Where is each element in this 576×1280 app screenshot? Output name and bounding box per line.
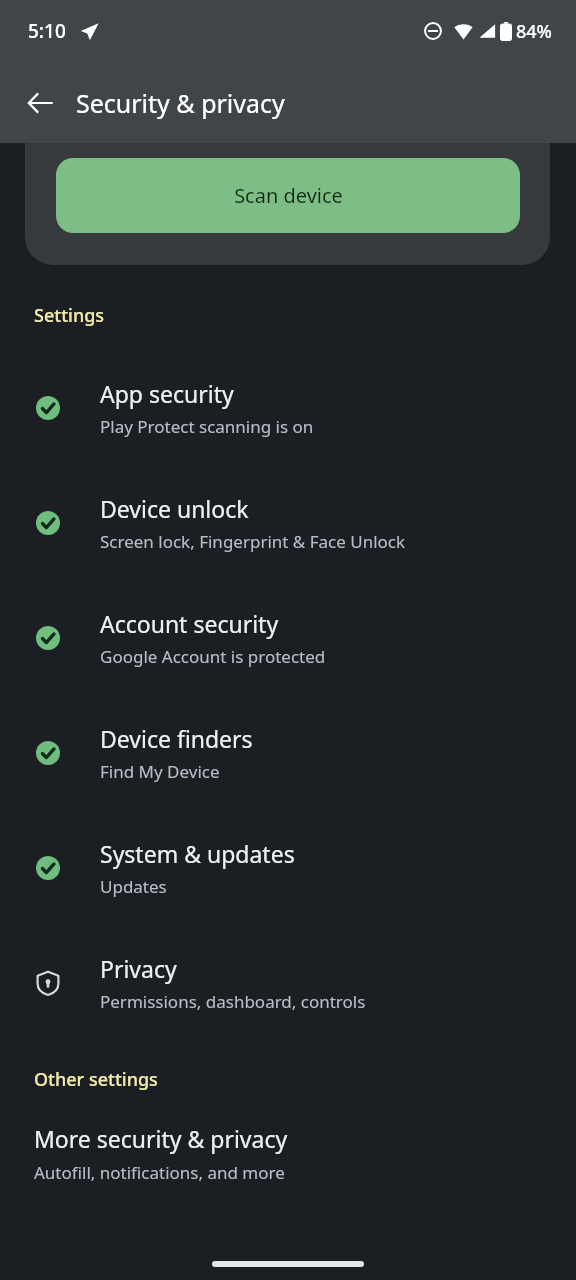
button[interactable]: Device unlock (0, 465, 576, 580)
staticText: Find My Device (100, 760, 220, 783)
staticText: Other settings (34, 1067, 158, 1092)
staticText: 5:10 (28, 18, 66, 44)
staticText: Google Account is protected (100, 645, 326, 668)
button[interactable]: Device finders (0, 695, 576, 810)
staticText: Permissions, dashboard, controls (100, 990, 366, 1013)
staticText: More security & privacy (34, 1123, 288, 1154)
button[interactable]: App security (0, 350, 576, 465)
staticText: Updates (100, 875, 167, 898)
staticText: 84% (516, 19, 552, 44)
button[interactable]: System & updates (0, 810, 576, 925)
staticText: Device unlock (100, 493, 249, 524)
staticText: Privacy (100, 953, 177, 984)
staticText: Screen lock, Fingerprint & Face Unlock (100, 530, 406, 553)
staticText: Scan device (234, 182, 343, 209)
button[interactable]: Account security (0, 580, 576, 695)
staticText: Device finders (100, 723, 253, 754)
staticText: Security & privacy (76, 86, 285, 120)
staticText: Settings (34, 303, 105, 328)
button[interactable]: More security & privacy (0, 1117, 576, 1194)
staticText: Account security (100, 608, 279, 639)
button[interactable]: Scan device (56, 158, 520, 233)
staticText: App security (100, 378, 234, 409)
staticText: Autofill, notifications, and more (34, 1161, 285, 1184)
staticText: System & updates (100, 838, 295, 869)
button[interactable]: Privacy (0, 925, 576, 1040)
staticText: Play Protect scanning is on (100, 415, 314, 438)
button[interactable]: Back (14, 77, 66, 129)
